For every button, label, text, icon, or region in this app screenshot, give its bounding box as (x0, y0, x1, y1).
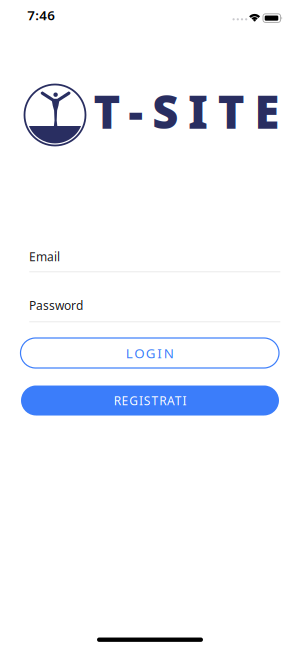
staticText: LOGIN (126, 344, 174, 362)
staticText: Email (29, 249, 60, 265)
button[interactable]: Email (29, 249, 280, 272)
button[interactable]: Password (29, 297, 280, 322)
staticText: Password (29, 297, 83, 313)
staticText: REGISTRATI (114, 392, 186, 408)
button[interactable]: LOGIN (20, 338, 279, 368)
staticText: 7:46 (27, 6, 55, 24)
staticText: T-SITE (94, 81, 280, 141)
button[interactable]: REGISTRATI (21, 385, 279, 415)
